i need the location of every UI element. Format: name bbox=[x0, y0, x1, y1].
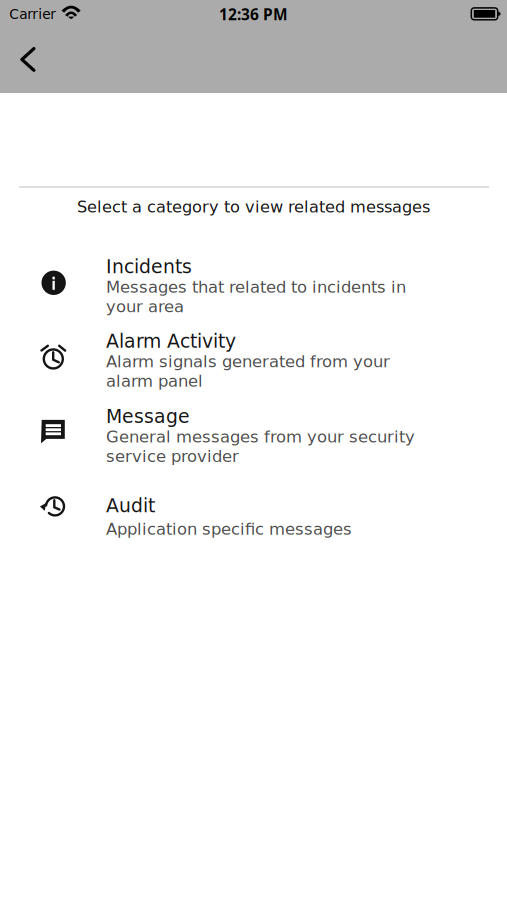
button[interactable]: Incidents bbox=[0, 256, 507, 316]
staticText: Alarm signals generated from your bbox=[106, 352, 390, 371]
staticText: Application specific messages bbox=[106, 519, 352, 539]
staticText: 12:36 PM bbox=[219, 4, 288, 25]
staticText: service provider bbox=[106, 447, 239, 466]
staticText: Messages that related to incidents in bbox=[106, 277, 406, 297]
staticText: Message bbox=[106, 405, 190, 427]
staticText: Audit bbox=[106, 495, 155, 517]
button[interactable]: Message bbox=[0, 405, 507, 466]
staticText: Incidents bbox=[106, 256, 192, 278]
staticText: Alarm Activity bbox=[106, 330, 236, 352]
staticText: Select a category to view related messag… bbox=[77, 197, 430, 216]
button[interactable]: Back bbox=[10, 37, 45, 82]
staticText: alarm panel bbox=[106, 371, 203, 391]
staticText: your area bbox=[106, 297, 184, 316]
button[interactable]: Alarm Activity bbox=[0, 330, 507, 391]
staticText: General messages from your security bbox=[106, 427, 415, 446]
button[interactable]: Audit bbox=[0, 495, 507, 539]
staticText: Carrier bbox=[9, 6, 56, 22]
